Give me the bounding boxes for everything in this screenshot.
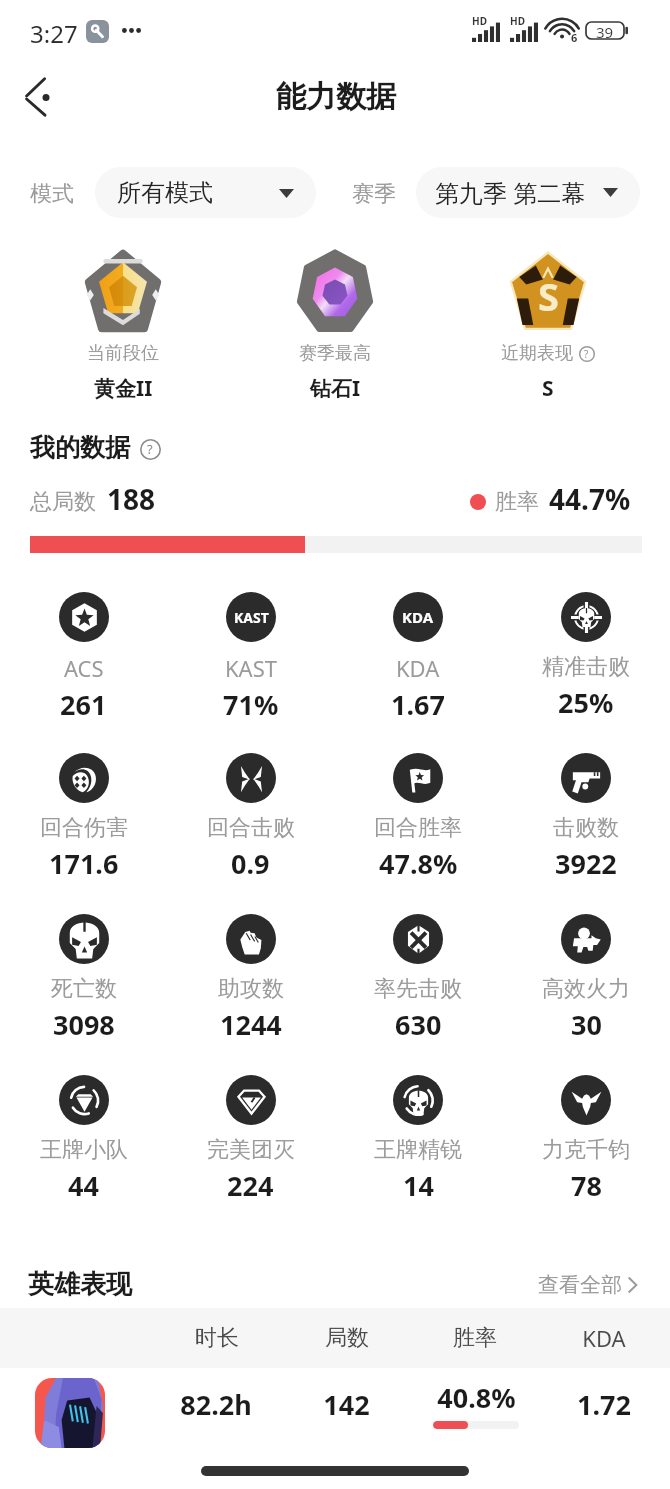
button[interactable]: 王牌小队 (0, 1075, 167, 1204)
button[interactable]: 回合胜率 (334, 753, 502, 882)
button[interactable]: 力克千钧 (502, 1075, 670, 1204)
staticText: 40.8% (437, 1379, 516, 1416)
button[interactable]: 率先击败 (334, 914, 502, 1043)
staticText: 39 (596, 22, 614, 39)
staticText: 3:27 (30, 17, 78, 50)
staticText: 高效火力 (542, 975, 630, 1003)
button[interactable]: 死亡数 (0, 914, 167, 1043)
staticText: 模式 (30, 180, 74, 208)
staticText: 王牌精锐 (374, 1136, 462, 1164)
staticText: 44 (68, 1167, 99, 1204)
staticText: 171.6 (49, 845, 119, 882)
button[interactable]: KAST (167, 592, 334, 723)
staticText: 我的数据 (30, 432, 130, 463)
staticText: 142 (323, 1386, 370, 1423)
button[interactable]: 第九季 第二幕 (416, 167, 640, 218)
staticText: 精准击败 (542, 653, 630, 681)
staticText: 赛季 (352, 180, 396, 208)
button[interactable]: 助攻数 (167, 914, 334, 1043)
staticText: 率先击败 (374, 975, 462, 1003)
staticText: S (538, 270, 559, 322)
button[interactable]: 精准击败 (502, 592, 670, 721)
staticText: 3098 (53, 1006, 115, 1043)
staticText: 71% (223, 686, 279, 723)
button[interactable]: S (448, 250, 648, 403)
staticText: 3922 (555, 845, 617, 882)
staticText: 总局数 (30, 488, 96, 516)
staticText: 查看全部 (538, 1272, 622, 1298)
button[interactable]: KDA (334, 592, 502, 723)
staticText: ? (584, 347, 589, 361)
staticText: 25% (558, 684, 614, 721)
staticText: KAST (225, 653, 277, 683)
button[interactable]: 回合击败 (167, 753, 334, 882)
staticText: 英雄表现 (28, 1268, 132, 1301)
staticText: 赛季最高 (299, 342, 371, 365)
staticText: 1.67 (391, 686, 445, 723)
staticText: 14 (403, 1167, 434, 1204)
button[interactable]: 查看全部 (538, 1272, 638, 1298)
staticText: 力克千钧 (542, 1136, 630, 1164)
staticText: 死亡数 (51, 975, 117, 1003)
button[interactable]: 高效火力 (502, 914, 670, 1043)
staticText: 钻石I (310, 374, 361, 403)
staticText: S (542, 374, 554, 403)
staticText: 261 (60, 686, 107, 723)
button[interactable]: 所有模式 (95, 167, 316, 218)
button[interactable]: 王牌精锐 (334, 1075, 502, 1204)
staticText: 47.8% (379, 845, 458, 882)
staticText: ? (147, 440, 153, 458)
staticText: 助攻数 (218, 975, 284, 1003)
staticText: 局数 (325, 1324, 369, 1352)
staticText: 近期表现 (501, 342, 573, 365)
staticText: 回合击败 (207, 814, 295, 842)
staticText: 胜率 (495, 488, 539, 516)
staticText: 30 (571, 1006, 602, 1043)
staticText: KDA (582, 1323, 626, 1353)
staticText: KDA (402, 607, 434, 627)
button[interactable]: 当前段位 (23, 250, 223, 403)
button[interactable] (0, 1368, 670, 1458)
staticText: 224 (227, 1167, 274, 1204)
staticText: 王牌小队 (40, 1136, 128, 1164)
staticText: 0.9 (231, 845, 270, 882)
staticText: 完美团灭 (207, 1136, 295, 1164)
staticText: HD (510, 14, 525, 28)
button[interactable]: Back (13, 70, 69, 126)
staticText: 188 (107, 480, 156, 518)
staticText: HD (472, 14, 487, 28)
button[interactable]: 完美团灭 (167, 1075, 334, 1204)
staticText: KDA (396, 653, 440, 683)
staticText: 能力数据 (276, 78, 396, 116)
staticText: 1.72 (577, 1386, 631, 1423)
staticText: 回合伤害 (40, 814, 128, 842)
staticText: 78 (571, 1167, 602, 1204)
staticText: 所有模式 (117, 178, 213, 208)
staticText: 第九季 第二幕 (435, 176, 586, 209)
button[interactable]: 赛季最高 (235, 250, 435, 403)
staticText: 630 (395, 1006, 442, 1043)
staticText: 击败数 (553, 814, 619, 842)
staticText: 时长 (195, 1324, 239, 1352)
staticText: 44.7% (549, 480, 631, 518)
staticText: 回合胜率 (374, 814, 462, 842)
button[interactable]: 回合伤害 (0, 753, 167, 882)
staticText: 82.2h (180, 1386, 252, 1423)
staticText: KAST (234, 608, 269, 627)
staticText: 胜率 (453, 1324, 497, 1352)
staticText: 当前段位 (87, 342, 159, 365)
staticText: ACS (64, 653, 104, 683)
staticText: 6 (571, 30, 578, 45)
button[interactable]: ACS (0, 592, 167, 723)
staticText: 1244 (220, 1006, 282, 1043)
button[interactable]: 击败数 (502, 753, 670, 882)
staticText: 黄金II (94, 374, 153, 403)
